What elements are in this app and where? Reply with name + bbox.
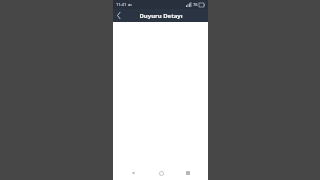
button[interactable]: Back: [113, 9, 124, 22]
staticText: 11:41: [116, 2, 127, 7]
button[interactable]: Back: [125, 166, 141, 180]
button[interactable]: Recent apps: [180, 166, 196, 180]
button[interactable]: Home: [153, 166, 169, 180]
staticText: Duyuru Detayı: [139, 12, 183, 20]
staticText: 76: [193, 2, 198, 7]
